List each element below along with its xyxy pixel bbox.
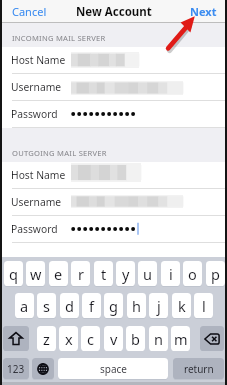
staticText: j [157,296,161,316]
staticText: o [188,264,197,284]
staticText: w [30,264,42,284]
button[interactable]: Cancel [12,4,47,19]
staticText: f [89,296,94,316]
staticText: n [154,329,163,349]
staticText: New Account [76,4,152,20]
staticText: k [178,296,186,316]
button[interactable]: c [81,326,100,351]
staticText: d [65,296,74,316]
staticText: s [43,296,50,316]
button[interactable]: x [59,326,78,351]
button[interactable]: r [71,261,90,286]
staticText: OUTGOING MAIL SERVER [12,148,107,158]
button[interactable]: return [173,358,224,379]
button[interactable]: q [4,261,23,286]
button[interactable]: 123 [3,358,29,379]
button[interactable]: Next [190,4,217,19]
staticText: p [211,264,220,284]
button[interactable]: Password [0,101,227,128]
button[interactable]: Host Name [0,47,227,74]
staticText: return [184,362,214,376]
button[interactable]: Delete [200,326,224,351]
button[interactable]: w [26,261,45,286]
staticText: i [169,264,173,284]
button[interactable]: Change keyboard [32,358,54,379]
button[interactable]: t [94,261,113,286]
button[interactable]: y [116,261,135,286]
staticText: y [122,264,130,284]
button[interactable]: z [37,326,56,351]
staticText: Username [11,195,62,209]
staticText: c [87,329,94,349]
button[interactable]: space [58,358,168,379]
button[interactable]: p [206,261,225,286]
button[interactable]: Host Name [0,162,227,189]
button[interactable]: f [82,293,101,318]
button[interactable]: l [194,293,213,318]
staticText: m [174,329,188,349]
staticText: Cancel [12,4,47,19]
button[interactable]: k [172,293,191,318]
staticText: q [9,264,18,284]
staticText: a [20,296,29,316]
staticText: INCOMING MAIL SERVER [12,33,106,43]
button[interactable]: b [126,326,145,351]
staticText: e [54,264,63,284]
staticText: Next [190,4,217,19]
button[interactable]: Password [0,216,227,243]
button[interactable]: m [171,326,190,351]
button[interactable]: s [37,293,56,318]
button[interactable]: Username [0,189,227,216]
button[interactable]: d [60,293,79,318]
staticText: r [78,264,84,284]
staticText: Password [11,107,58,121]
staticText: l [202,296,206,316]
button[interactable]: j [149,293,168,318]
button[interactable]: Username [0,74,227,101]
staticText: space [100,362,127,376]
staticText: u [143,264,152,284]
staticText: z [43,329,50,349]
button[interactable]: h [127,293,146,318]
button[interactable]: Shift [3,326,29,351]
button[interactable]: n [149,326,168,351]
staticText: Username [11,80,62,94]
button[interactable]: i [161,261,180,286]
staticText: 123 [7,362,25,376]
button[interactable]: g [104,293,123,318]
staticText: t [101,264,107,284]
button[interactable]: e [49,261,68,286]
staticText: g [109,296,118,316]
staticText: h [132,296,141,316]
staticText: v [110,329,118,349]
staticText: b [131,329,140,349]
staticText: Host Name [11,168,66,182]
button[interactable]: a [15,293,34,318]
button[interactable]: u [138,261,157,286]
button[interactable]: v [104,326,123,351]
button[interactable]: o [183,261,202,286]
staticText: x [65,329,73,349]
staticText: Host Name [11,53,66,67]
staticText: Password [11,222,58,236]
